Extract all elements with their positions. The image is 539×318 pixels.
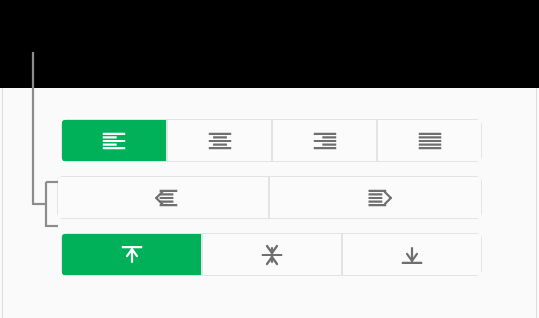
button[interactable]: Align right	[273, 120, 376, 161]
button[interactable]: Align center	[168, 120, 271, 161]
button[interactable]: Decrease indent	[58, 177, 268, 218]
button[interactable]: Align bottom	[343, 234, 481, 275]
button[interactable]: Align top	[62, 234, 201, 275]
button[interactable]: Align left	[62, 120, 166, 161]
button[interactable]: Align middle	[203, 234, 341, 275]
button[interactable]: Increase indent	[270, 177, 481, 218]
button[interactable]: Justify	[378, 120, 481, 161]
